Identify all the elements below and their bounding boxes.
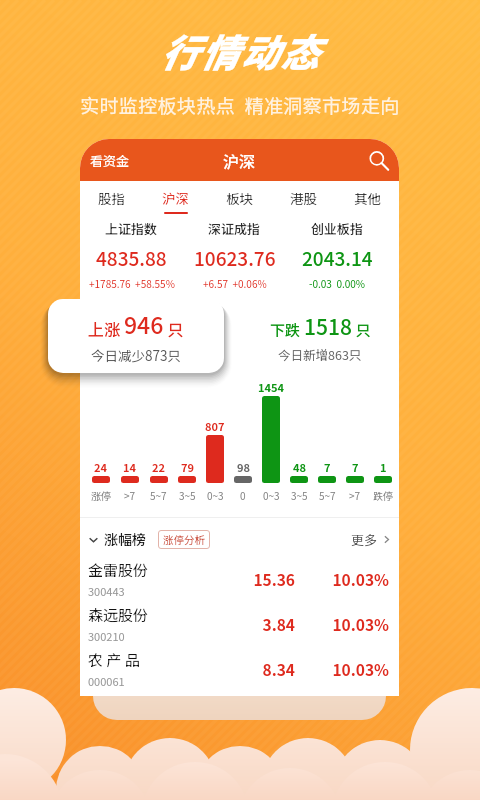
staticText: 22 <box>152 459 165 475</box>
staticText: 14 <box>123 459 136 475</box>
staticText: 行情动态 <box>160 23 321 78</box>
staticText: 1518 <box>304 311 352 341</box>
staticText: 10623.76 <box>194 244 276 272</box>
staticText: 创业板指 <box>311 219 364 238</box>
staticText: 只 <box>164 317 184 340</box>
button[interactable]: 板块 <box>207 181 271 215</box>
staticText: 涨停分析 <box>163 532 205 547</box>
staticText: 300210 <box>88 628 125 644</box>
staticText: >7 <box>124 488 136 502</box>
staticText: -0.03 0.00% <box>309 276 366 290</box>
staticText: 涨幅榜 <box>104 529 146 549</box>
staticText: 看资金 <box>90 151 130 170</box>
staticText: 300443 <box>88 583 125 599</box>
staticText: 3~5 <box>179 488 196 502</box>
staticText: 3.84 <box>205 613 295 635</box>
staticText: 000061 <box>88 673 125 689</box>
button[interactable]: 涨停分析 <box>158 530 210 549</box>
staticText: 深证成指 <box>208 219 261 238</box>
staticText: 4835.88 <box>96 244 167 272</box>
staticText: 其他 <box>354 188 381 208</box>
staticText: 沪深 <box>223 149 256 172</box>
staticText: 946 <box>124 307 164 340</box>
staticText: 15.36 <box>205 568 295 590</box>
staticText: 79 <box>181 459 194 475</box>
staticText: 10.03% <box>299 613 389 635</box>
staticText: +6.57 +0.06% <box>203 276 267 290</box>
staticText: >7 <box>349 488 361 502</box>
staticText: 更多 <box>351 530 378 549</box>
button[interactable]: 森远股份 <box>80 601 399 646</box>
staticText: 5~7 <box>319 488 336 502</box>
staticText: 2043.14 <box>302 244 373 272</box>
button[interactable]: 更多 <box>351 530 391 549</box>
staticText: 只 <box>352 319 371 341</box>
staticText: 1 <box>380 459 387 475</box>
button[interactable]: 股指 <box>80 181 143 215</box>
button[interactable]: 农 产 品 <box>80 646 399 691</box>
staticText: 森远股份 <box>88 604 149 626</box>
staticText: 5~7 <box>150 488 167 502</box>
staticText: 7 <box>324 459 331 475</box>
button[interactable]: 沪深 <box>143 181 207 215</box>
staticText: 沪深 <box>162 188 189 208</box>
staticText: 0 <box>240 488 246 502</box>
staticText: 实时监控板块热点 精准洞察市场走向 <box>80 91 400 119</box>
button[interactable]: Search <box>366 148 390 172</box>
button[interactable]: 港股 <box>271 181 335 215</box>
staticText: 24 <box>94 459 107 475</box>
staticText: 8.34 <box>205 658 295 680</box>
staticText: 48 <box>293 459 306 475</box>
staticText: +1785.76 +58.55% <box>89 276 175 290</box>
staticText: 跌停 <box>373 488 393 502</box>
staticText: 今日新增863只 <box>278 345 362 363</box>
staticText: 上涨 <box>88 317 124 340</box>
staticText: 板块 <box>226 188 253 208</box>
staticText: 0~3 <box>263 488 280 502</box>
staticText: 农 产 品 <box>88 649 140 671</box>
staticText: 10.03% <box>299 568 389 590</box>
button[interactable]: 金雷股份 <box>80 556 399 601</box>
staticText: 股指 <box>98 188 125 208</box>
button[interactable]: 看资金 <box>80 146 136 175</box>
staticText: 金雷股份 <box>88 559 149 581</box>
staticText: 0~3 <box>207 488 224 502</box>
staticText: 涨停 <box>91 488 111 502</box>
staticText: 98 <box>237 459 250 475</box>
staticText: 3~5 <box>291 488 308 502</box>
staticText: 今日减少873只 <box>91 345 181 365</box>
staticText: 807 <box>205 418 225 434</box>
staticText: 7 <box>352 459 359 475</box>
staticText: 港股 <box>290 188 317 208</box>
button[interactable]: 上涨 <box>48 299 224 373</box>
staticText: 10.03% <box>299 658 389 680</box>
staticText: 1454 <box>258 379 284 395</box>
button[interactable]: 其他 <box>335 181 399 215</box>
staticText: 下跌 <box>270 319 304 341</box>
staticText: 上证指数 <box>105 219 158 238</box>
